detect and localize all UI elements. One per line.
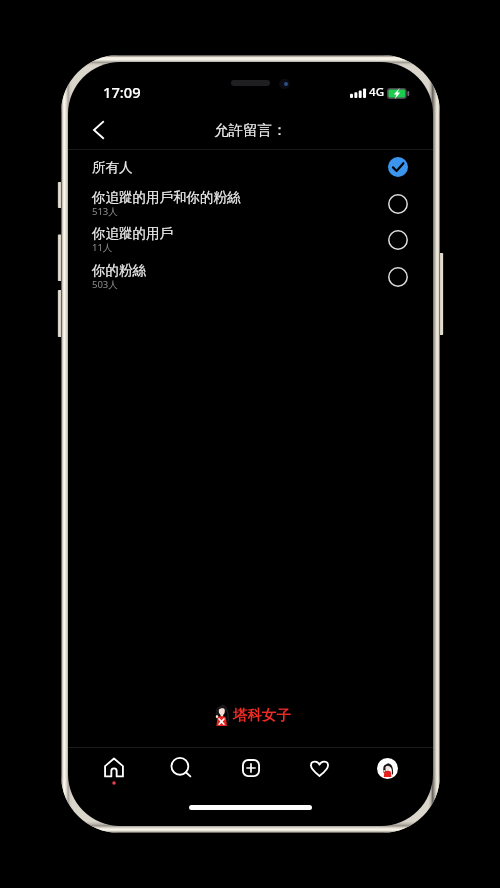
button[interactable]: Profile — [360, 746, 414, 790]
button[interactable]: 你的粉絲 — [68, 259, 433, 295]
staticText: 4G — [369, 84, 385, 100]
staticText: 17:09 — [103, 82, 141, 102]
staticText: 513人 — [92, 205, 118, 218]
button[interactable]: Back — [83, 115, 113, 145]
button[interactable]: Search — [154, 746, 208, 790]
staticText: 你的粉絲 — [92, 262, 146, 279]
staticText: 你追蹤的用戶和你的粉絲 — [92, 189, 241, 206]
button[interactable]: 你追蹤的用戶和你的粉絲 — [68, 186, 433, 222]
button[interactable]: Activity — [292, 746, 346, 790]
staticText: 你追蹤的用戶 — [92, 225, 173, 242]
button[interactable]: 所有人 — [68, 149, 433, 185]
button[interactable]: Home — [87, 746, 141, 790]
button[interactable]: Create — [224, 746, 278, 790]
staticText: 503人 — [92, 278, 118, 291]
staticText: 允許留言： — [68, 121, 433, 139]
staticText: 塔科女子 — [233, 706, 291, 724]
staticText: 11人 — [92, 241, 113, 254]
button[interactable]: 你追蹤的用戶 — [68, 222, 433, 258]
staticText: 所有人 — [92, 159, 133, 176]
